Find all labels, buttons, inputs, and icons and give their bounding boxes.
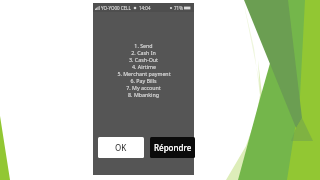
staticText: 3. Cash-Out <box>129 56 158 63</box>
staticText: Répondre <box>154 142 192 153</box>
other: Battery <box>184 6 192 10</box>
staticText: 1. Send <box>134 42 153 49</box>
staticText: 71% <box>174 5 183 11</box>
staticText: 6. Pay Bills <box>130 77 157 84</box>
button[interactable]: OK <box>98 137 144 158</box>
button[interactable]: Répondre <box>150 137 195 158</box>
staticText: 14:04 <box>139 5 151 11</box>
staticText: 8. Mbanking <box>128 91 159 98</box>
staticText: 7. My account <box>126 84 161 91</box>
other: Wi-Fi <box>133 6 137 10</box>
staticText: 4. Airtime <box>132 63 156 70</box>
staticText: 2. Cash In <box>131 49 156 56</box>
other: Signal <box>95 6 100 10</box>
staticText: OK <box>115 142 127 153</box>
staticText: YO-YO00 CELL <box>101 5 131 11</box>
staticText: 5. Merchant payment <box>117 70 171 77</box>
